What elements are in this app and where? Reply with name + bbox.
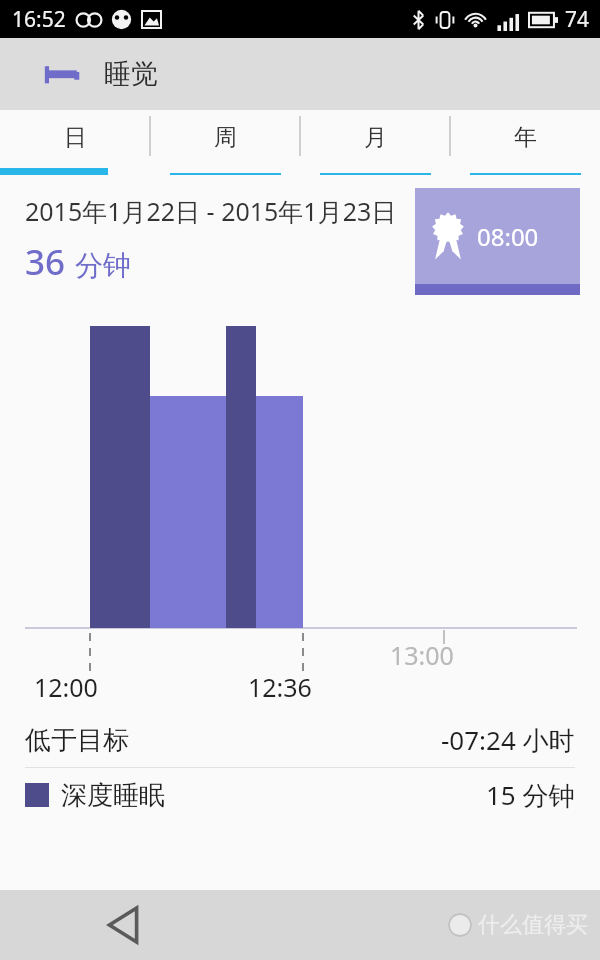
staticText: 08:00 <box>477 220 539 253</box>
button[interactable]: 日 <box>0 110 150 180</box>
staticText: 15 分钟 <box>486 777 575 813</box>
staticText: 年 <box>514 123 537 152</box>
staticText: 13:00 <box>390 638 454 672</box>
button[interactable]: Back <box>98 900 148 950</box>
staticText: 12:36 <box>248 670 312 704</box>
button[interactable]: 月 <box>300 110 450 180</box>
staticText: 睡觉 <box>104 57 158 91</box>
staticText: 分钟 <box>75 248 131 283</box>
staticText: 12:00 <box>34 670 98 704</box>
staticText: 日 <box>64 123 87 152</box>
button[interactable]: 低于目标 <box>0 713 600 767</box>
button[interactable]: Sleep <box>42 58 88 90</box>
staticText: 月 <box>364 123 387 152</box>
staticText: 低于目标 <box>25 724 129 757</box>
button[interactable]: 年 <box>450 110 600 180</box>
staticText: 2015年1月22日 - 2015年1月23日 <box>25 194 397 228</box>
button[interactable]: 深度睡眠 <box>0 768 600 822</box>
staticText: 深度睡眠 <box>61 779 165 812</box>
staticText: 周 <box>214 123 237 152</box>
staticText: 16:52 <box>12 5 66 34</box>
staticText: -07:24 小时 <box>441 722 575 758</box>
staticText: 什么值得买 <box>478 911 588 939</box>
staticText: 74 <box>565 5 590 34</box>
staticText: 36 <box>25 238 66 286</box>
button[interactable]: 08:00 <box>415 188 580 295</box>
button[interactable]: 周 <box>150 110 300 180</box>
